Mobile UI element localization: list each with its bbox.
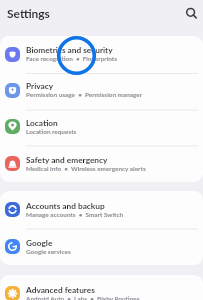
staticText: Medical info • Wireless emergency alerts [26, 165, 146, 173]
button[interactable]: Biometrics and security [0, 36, 203, 72]
staticText: Google [26, 238, 53, 248]
staticText: Location [26, 118, 58, 128]
button[interactable]: Google [0, 228, 203, 265]
staticText: Settings [7, 6, 50, 20]
button[interactable]: Accounts and backup [0, 191, 203, 228]
button[interactable]: Location [0, 108, 203, 145]
staticText: Location requests [26, 128, 77, 136]
button[interactable]: Privacy [0, 72, 203, 108]
staticText: Biometrics and security [26, 45, 113, 55]
staticText: Safety and emergency [26, 155, 108, 165]
staticText: Manage accounts • Smart Switch [26, 211, 124, 219]
staticText: Accounts and backup [26, 201, 105, 211]
staticText: Privacy [26, 81, 54, 91]
button[interactable]: Advanced features [0, 275, 203, 300]
staticText: Advanced features [26, 285, 95, 295]
staticText: Permission usage • Permission manager [26, 91, 143, 99]
staticText: Google services [26, 248, 71, 256]
staticText: Android Auto • Labs • Bixby Routines [26, 295, 140, 300]
button[interactable]: Safety and emergency [0, 145, 203, 182]
staticText: Face recognition • Fingerprints [26, 55, 118, 63]
button[interactable]: Search [182, 4, 200, 22]
